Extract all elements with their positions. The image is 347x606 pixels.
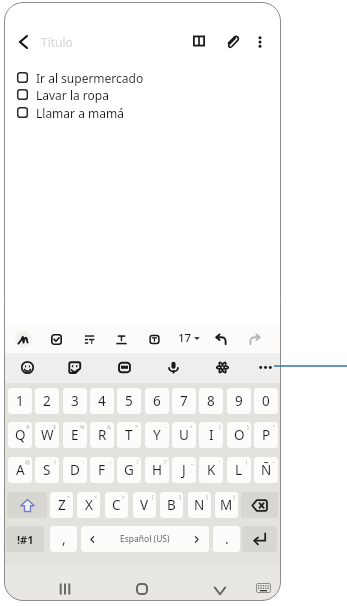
- button[interactable]: Enter: [242, 526, 277, 552]
- button[interactable]: Keyboard settings: [211, 356, 233, 378]
- button[interactable]: 0: [254, 388, 278, 414]
- staticText: Z: [58, 496, 66, 514]
- button[interactable]: Llamar a mamá: [17, 104, 207, 121]
- button[interactable]: E: [63, 422, 87, 448]
- button[interactable]: Recents: [54, 578, 76, 600]
- staticText: 8: [207, 392, 215, 410]
- staticText: J: [182, 461, 186, 479]
- button[interactable]: U: [172, 422, 196, 448]
- button[interactable]: I: [199, 422, 223, 448]
- staticText: $: [53, 423, 57, 430]
- button[interactable]: 9: [227, 388, 251, 414]
- button[interactable]: W: [35, 422, 59, 448]
- button[interactable]: O: [227, 422, 251, 448]
- button[interactable]: R: [90, 422, 114, 448]
- button[interactable]: P: [254, 422, 278, 448]
- button[interactable]: H: [145, 457, 169, 483]
- button[interactable]: .: [213, 526, 240, 552]
- staticText: 6: [153, 392, 161, 410]
- button[interactable]: Q: [8, 422, 32, 448]
- button[interactable]: 3: [63, 388, 87, 414]
- staticText: ]: [179, 493, 181, 500]
- button[interactable]: Checklist: [45, 328, 67, 350]
- button[interactable]: N: [188, 492, 211, 518]
- staticText: N: [194, 496, 205, 514]
- staticText: Ñ: [261, 461, 272, 479]
- staticText: K: [207, 461, 216, 479]
- button[interactable]: T: [117, 422, 141, 448]
- staticText: 2: [43, 392, 51, 410]
- button[interactable]: Attach: [221, 30, 245, 54]
- staticText: !: [137, 458, 139, 465]
- button[interactable]: More options: [248, 30, 272, 54]
- button[interactable]: B: [160, 492, 183, 518]
- button[interactable]: Stickers: [63, 356, 85, 378]
- staticText: A: [16, 461, 25, 479]
- button[interactable]: L: [227, 457, 251, 483]
- button[interactable]: Hide keyboard: [209, 580, 231, 601]
- button[interactable]: J: [172, 457, 196, 483]
- staticText: I: [209, 426, 214, 444]
- button[interactable]: 17: [178, 330, 200, 346]
- button[interactable]: V: [133, 492, 156, 518]
- button[interactable]: C: [105, 492, 128, 518]
- button[interactable]: GIF: [113, 356, 135, 378]
- staticText: P: [262, 426, 271, 444]
- staticText: R: [98, 426, 107, 444]
- staticText: 0: [262, 392, 270, 410]
- staticText: Ir al supermercado: [36, 70, 144, 86]
- button[interactable]: Text box: [143, 328, 165, 350]
- button[interactable]: M: [215, 492, 238, 518]
- button[interactable]: Handwriting: [12, 328, 34, 350]
- staticText: X: [85, 496, 93, 514]
- button[interactable]: S: [35, 457, 59, 483]
- staticText: ): [247, 423, 249, 430]
- staticText: 9: [235, 392, 243, 410]
- button[interactable]: 4: [90, 388, 114, 414]
- button[interactable]: Back: [13, 31, 34, 52]
- button[interactable]: A: [8, 457, 32, 483]
- button[interactable]: Symbols: [6, 526, 44, 552]
- button[interactable]: Text format: [110, 328, 132, 350]
- button[interactable]: 7: [172, 388, 196, 414]
- button[interactable]: Change keyboard: [256, 583, 271, 593]
- staticText: >: [122, 493, 126, 500]
- button[interactable]: D: [63, 457, 87, 483]
- button[interactable]: Undo: [210, 328, 232, 350]
- staticText: &: [107, 423, 112, 430]
- button[interactable]: X: [77, 492, 100, 518]
- button[interactable]: Space: [81, 526, 209, 552]
- button[interactable]: ,: [50, 526, 77, 552]
- button[interactable]: Voice input: [162, 356, 184, 378]
- button[interactable]: F: [90, 457, 114, 483]
- staticText: }: [233, 493, 236, 500]
- button[interactable]: Redo: [244, 328, 266, 350]
- button[interactable]: 8: [199, 388, 223, 414]
- staticText: 7: [180, 392, 188, 410]
- staticText: /: [54, 458, 57, 465]
- staticText: F: [98, 461, 106, 479]
- button[interactable]: Home: [131, 578, 153, 600]
- button[interactable]: Shift: [7, 492, 47, 518]
- staticText: _: [191, 458, 194, 465]
- button[interactable]: Backspace: [241, 492, 278, 518]
- staticText: {: [206, 493, 209, 500]
- button[interactable]: More: [254, 356, 276, 378]
- button[interactable]: Z: [50, 492, 73, 518]
- staticText: :: [83, 458, 85, 465]
- staticText: W: [41, 426, 54, 444]
- button[interactable]: 5: [117, 388, 141, 414]
- button[interactable]: Emoji: [16, 356, 38, 378]
- button[interactable]: Lavar la ropa: [17, 86, 207, 103]
- button[interactable]: K: [199, 457, 223, 483]
- button[interactable]: Y: [145, 422, 169, 448]
- staticText: C: [112, 496, 121, 514]
- button[interactable]: 1: [8, 388, 32, 414]
- button[interactable]: Bullet list: [78, 328, 100, 350]
- button[interactable]: Reading mode: [187, 29, 211, 53]
- button[interactable]: Ir al supermercado: [17, 69, 207, 86]
- button[interactable]: G: [117, 457, 141, 483]
- button[interactable]: 6: [145, 388, 169, 414]
- button[interactable]: Ñ: [254, 457, 278, 483]
- button[interactable]: 2: [35, 388, 59, 414]
